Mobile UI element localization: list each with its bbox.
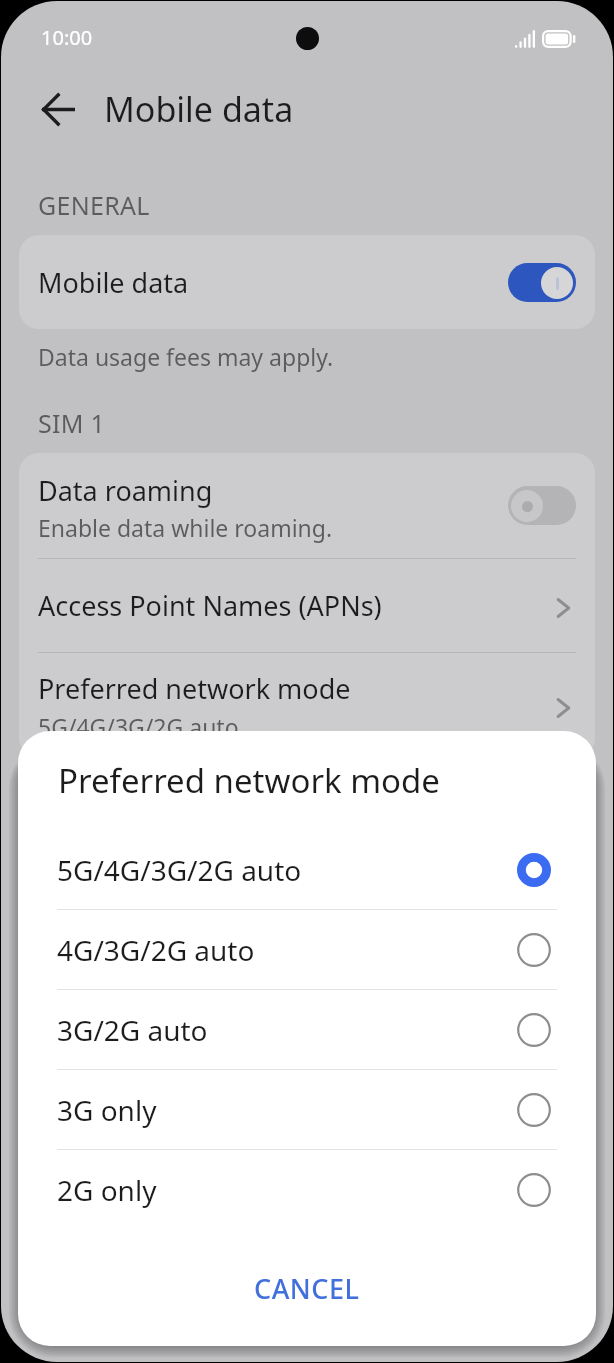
- staticText: 3G only: [57, 1091, 517, 1129]
- staticText: Preferred network mode: [38, 670, 351, 707]
- button[interactable]: Data roaming: [19, 453, 595, 558]
- staticText: Mobile data: [104, 86, 294, 132]
- button[interactable]: 4G/3G/2G auto: [18, 910, 596, 989]
- staticText: 5G/4G/3G/2G auto: [38, 711, 239, 742]
- button[interactable]: 3G only: [18, 1070, 596, 1149]
- button[interactable]: 5G/4G/3G/2G auto: [18, 830, 596, 909]
- staticText: SIM 1: [38, 406, 106, 440]
- staticText: GENERAL: [38, 188, 150, 222]
- button[interactable]: Mobile data on: [508, 263, 576, 302]
- staticText: Preferred network mode: [58, 758, 440, 803]
- button[interactable]: Back: [31, 82, 85, 136]
- staticText: Data roaming: [38, 472, 213, 509]
- button[interactable]: Preferred network mode: [19, 653, 595, 758]
- button[interactable]: Access Point Names (APNs): [19, 559, 595, 652]
- staticText: Enable data while roaming.: [38, 512, 333, 543]
- staticText: 4G/3G/2G auto: [57, 931, 517, 969]
- button[interactable]: Data roaming off: [508, 486, 576, 525]
- button[interactable]: 2G only: [18, 1150, 596, 1229]
- button[interactable]: Mobile data: [19, 235, 595, 329]
- staticText: 10:00: [41, 24, 93, 51]
- staticText: Access Point Names (APNs): [38, 587, 382, 624]
- staticText: 3G/2G auto: [57, 1011, 517, 1049]
- staticText: CANCEL: [254, 1270, 360, 1307]
- button[interactable]: 3G/2G auto: [18, 990, 596, 1069]
- staticText: 2G only: [57, 1171, 517, 1209]
- button[interactable]: CANCEL: [230, 1258, 384, 1319]
- staticText: Mobile data: [38, 264, 508, 301]
- staticText: Data usage fees may apply.: [38, 341, 334, 372]
- staticText: 5G/4G/3G/2G auto: [57, 851, 517, 889]
